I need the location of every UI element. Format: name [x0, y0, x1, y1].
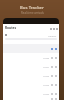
button[interactable]: 12:03	[5, 80, 57, 89]
staticText: Nearby	[48, 34, 57, 37]
staticText: 12:03	[43, 83, 50, 86]
button[interactable]: 12:00	[5, 53, 57, 62]
button[interactable]: 12:01	[5, 62, 57, 71]
button[interactable]: Nearby	[5, 32, 57, 38]
staticText: Routes	[5, 26, 17, 30]
staticText: 12:02	[43, 74, 50, 77]
button[interactable]: 12:05	[5, 98, 57, 100]
staticText: 12:01	[43, 65, 50, 68]
staticText: Bus Tracker	[20, 5, 44, 11]
staticText: 12:00	[43, 56, 50, 59]
button[interactable]: Action	[55, 27, 58, 30]
button[interactable]: Action	[49, 27, 52, 30]
staticText: 12:04	[43, 92, 50, 95]
staticText: Real-time arrivals	[21, 11, 44, 15]
button[interactable]: 12:04	[5, 89, 57, 98]
button[interactable]: 12:02	[5, 71, 57, 80]
button[interactable]: Action	[52, 27, 55, 30]
